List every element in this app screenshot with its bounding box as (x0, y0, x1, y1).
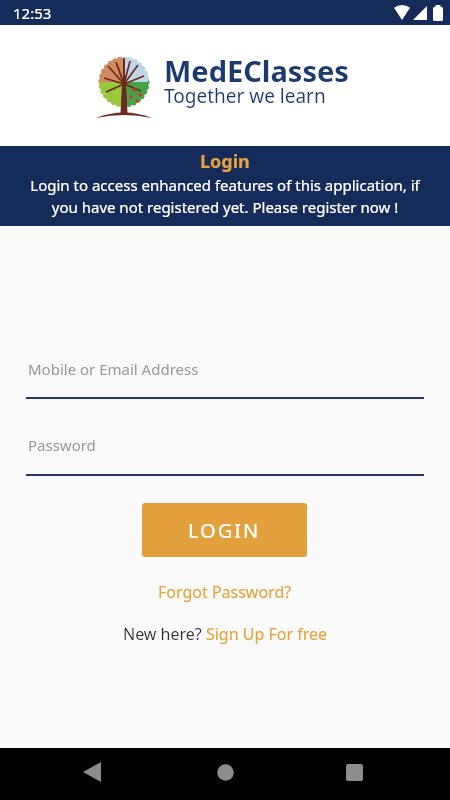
staticText: Password (28, 435, 96, 455)
staticText: LOGIN (188, 517, 261, 544)
staticText: Forgot Password? (158, 581, 292, 603)
staticText: New here? Sign Up For free (123, 623, 328, 645)
button[interactable]: Forgot Password? (0, 578, 450, 606)
button[interactable]: Mobile or Email Address (0, 346, 450, 392)
staticText: 12:53 (13, 3, 52, 23)
staticText: MedEClasses (164, 51, 349, 90)
button[interactable] (185, 748, 265, 800)
staticText: Mobile or Email Address (28, 359, 199, 379)
staticText: Login to access enhanced features of thi… (30, 175, 420, 218)
button[interactable]: New here? Sign Up For free (0, 620, 450, 648)
button[interactable]: LOGIN (142, 503, 307, 557)
staticText: Login (200, 149, 250, 174)
button[interactable]: Password (0, 422, 450, 468)
staticText: Together we learn (164, 83, 326, 109)
button[interactable] (314, 748, 394, 800)
button[interactable] (52, 748, 132, 800)
